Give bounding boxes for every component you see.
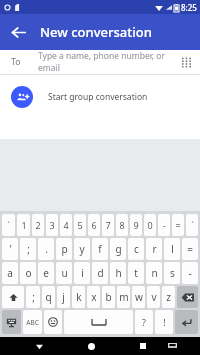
- button[interactable]: 2: [32, 214, 44, 236]
- staticText: 5: [77, 219, 83, 231]
- staticText: !: [163, 316, 166, 328]
- button[interactable]: 0: [144, 214, 156, 236]
- staticText: m: [119, 290, 129, 304]
- staticText: Start group conversation: [48, 91, 148, 103]
- button[interactable]: v: [147, 286, 160, 308]
- staticText: n: [151, 266, 158, 280]
- button[interactable]: y: [74, 238, 90, 260]
- button[interactable]: l: [164, 238, 180, 260]
- button[interactable]: r: [146, 238, 162, 260]
- button[interactable]: o: [20, 262, 36, 284]
- button[interactable]: m: [117, 286, 130, 308]
- staticText: -: [188, 266, 192, 280]
- button[interactable]: 5: [74, 214, 86, 236]
- staticText: ': [9, 242, 12, 256]
- staticText: New conversation: [40, 23, 152, 41]
- button[interactable]: ´: [186, 214, 198, 236]
- staticText: q: [45, 290, 52, 304]
- staticText: Type a name, phone number, or email: [38, 50, 174, 74]
- button[interactable]: 8: [116, 214, 128, 236]
- staticText: r: [152, 242, 157, 256]
- button[interactable]: p: [56, 238, 72, 260]
- button[interactable]: Emoji: [44, 310, 62, 334]
- button[interactable]: Recents: [134, 337, 152, 355]
- staticText: 1: [21, 219, 27, 231]
- button[interactable]: k: [72, 286, 85, 308]
- staticText: k: [76, 290, 82, 304]
- staticText: 8: [119, 219, 125, 231]
- button[interactable]: Start group conversation: [0, 75, 200, 119]
- button[interactable]: Switch keyboard: [2, 310, 21, 334]
- button[interactable]: g: [110, 238, 126, 260]
- staticText: ;: [32, 290, 35, 304]
- button[interactable]: q: [42, 286, 55, 308]
- button[interactable]: ?: [135, 310, 153, 334]
- button[interactable]: h: [110, 262, 126, 284]
- staticText: f: [98, 242, 102, 256]
- button[interactable]: Dialpad: [174, 50, 198, 74]
- button[interactable]: w: [132, 286, 145, 308]
- staticText: y: [79, 242, 85, 256]
- button[interactable]: i: [74, 262, 90, 284]
- button[interactable]: Shift: [2, 286, 24, 308]
- staticText: l: [171, 242, 174, 256]
- button[interactable]: 4: [60, 214, 72, 236]
- button[interactable]: ;: [26, 286, 40, 308]
- staticText: 7: [105, 219, 111, 231]
- button[interactable]: u: [56, 262, 72, 284]
- button[interactable]: f: [92, 238, 108, 260]
- button[interactable]: Enter: [175, 310, 198, 334]
- staticText: d: [97, 266, 104, 280]
- staticText: c: [134, 242, 139, 256]
- staticText: o: [25, 266, 32, 280]
- button[interactable]: Back: [30, 337, 48, 355]
- staticText: i: [81, 266, 84, 280]
- button[interactable]: x: [87, 286, 100, 308]
- button[interactable]: z: [162, 286, 175, 308]
- button[interactable]: !: [155, 310, 173, 334]
- button[interactable]: Hide keyboard: [163, 337, 181, 355]
- staticText: w: [135, 290, 143, 304]
- button[interactable]: 1: [17, 214, 30, 236]
- staticText: 6: [91, 219, 97, 231]
- staticText: j: [62, 290, 65, 304]
- button[interactable]: b: [102, 286, 115, 308]
- button[interactable]: 6: [88, 214, 100, 236]
- button[interactable]: -: [182, 262, 198, 284]
- button[interactable]: ;: [20, 238, 36, 260]
- staticText: ´: [191, 219, 194, 231]
- button[interactable]: ': [2, 238, 18, 260]
- button[interactable]: 7: [102, 214, 114, 236]
- button[interactable]: ABC: [23, 310, 42, 334]
- button[interactable]: `: [2, 214, 15, 236]
- staticText: x: [91, 290, 97, 304]
- button[interactable]: n: [146, 262, 162, 284]
- button[interactable]: j: [57, 286, 70, 308]
- button[interactable]: Home: [82, 337, 100, 355]
- staticText: =: [175, 219, 181, 231]
- button[interactable]: =: [182, 238, 198, 260]
- button[interactable]: 9: [130, 214, 142, 236]
- button[interactable]: Back: [0, 14, 36, 50]
- staticText: To: [11, 56, 21, 68]
- staticText: v: [151, 290, 157, 304]
- staticText: =: [187, 242, 193, 256]
- button[interactable]: 3: [46, 214, 58, 236]
- staticText: u: [61, 266, 68, 280]
- button[interactable]: t: [128, 262, 144, 284]
- button[interactable]: d: [92, 262, 108, 284]
- button[interactable]: c: [128, 238, 144, 260]
- button[interactable]: e: [38, 262, 54, 284]
- button[interactable]: s: [164, 262, 180, 284]
- staticText: p: [61, 242, 68, 256]
- staticText: t: [134, 266, 138, 280]
- button[interactable]: To: [0, 50, 200, 74]
- staticText: g: [115, 242, 122, 256]
- button[interactable]: -: [158, 214, 170, 236]
- staticText: 4: [63, 219, 69, 231]
- button[interactable]: Space: [64, 310, 133, 334]
- button[interactable]: Backspace: [177, 286, 198, 308]
- button[interactable]: a: [2, 262, 18, 284]
- button[interactable]: .: [38, 238, 54, 260]
- button[interactable]: =: [172, 214, 184, 236]
